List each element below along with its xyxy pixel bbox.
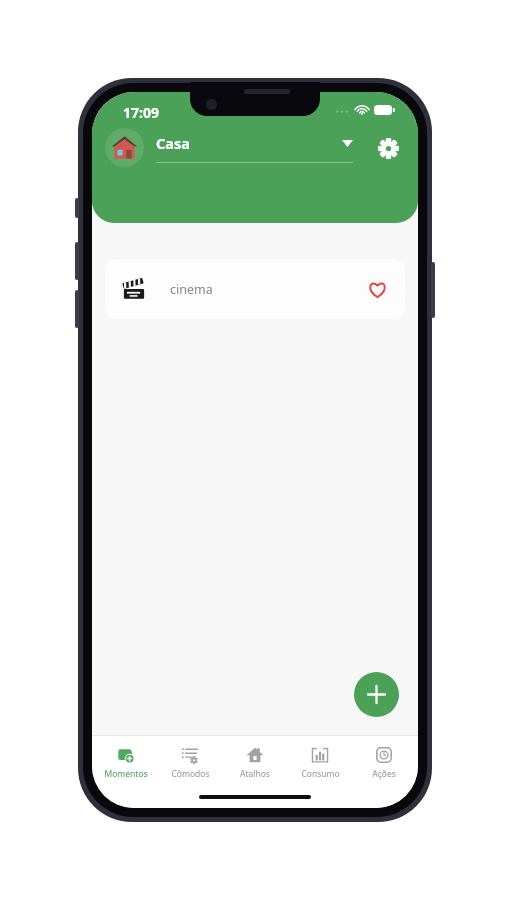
button[interactable]: Atalhos	[224, 744, 286, 782]
button[interactable]: Momentos	[95, 744, 157, 782]
staticText: Atalhos	[240, 768, 270, 780]
button[interactable]: Casa	[105, 128, 144, 167]
button[interactable]: Casa	[156, 133, 353, 163]
staticText: cinema	[170, 281, 213, 298]
staticText: Momentos	[104, 768, 148, 780]
button[interactable]: cinema	[105, 259, 405, 319]
staticText: Ações	[372, 768, 396, 780]
staticText: 17:09	[123, 103, 159, 122]
button[interactable]: Ações	[353, 744, 415, 782]
staticText: Cômodos	[171, 768, 210, 780]
staticText: Casa	[156, 133, 190, 153]
button[interactable]: Consumo	[289, 744, 351, 782]
staticText: Consumo	[301, 768, 340, 780]
button[interactable]: Add	[354, 672, 399, 717]
button[interactable]: Cômodos	[159, 744, 221, 782]
button[interactable]: Settings	[371, 131, 405, 165]
